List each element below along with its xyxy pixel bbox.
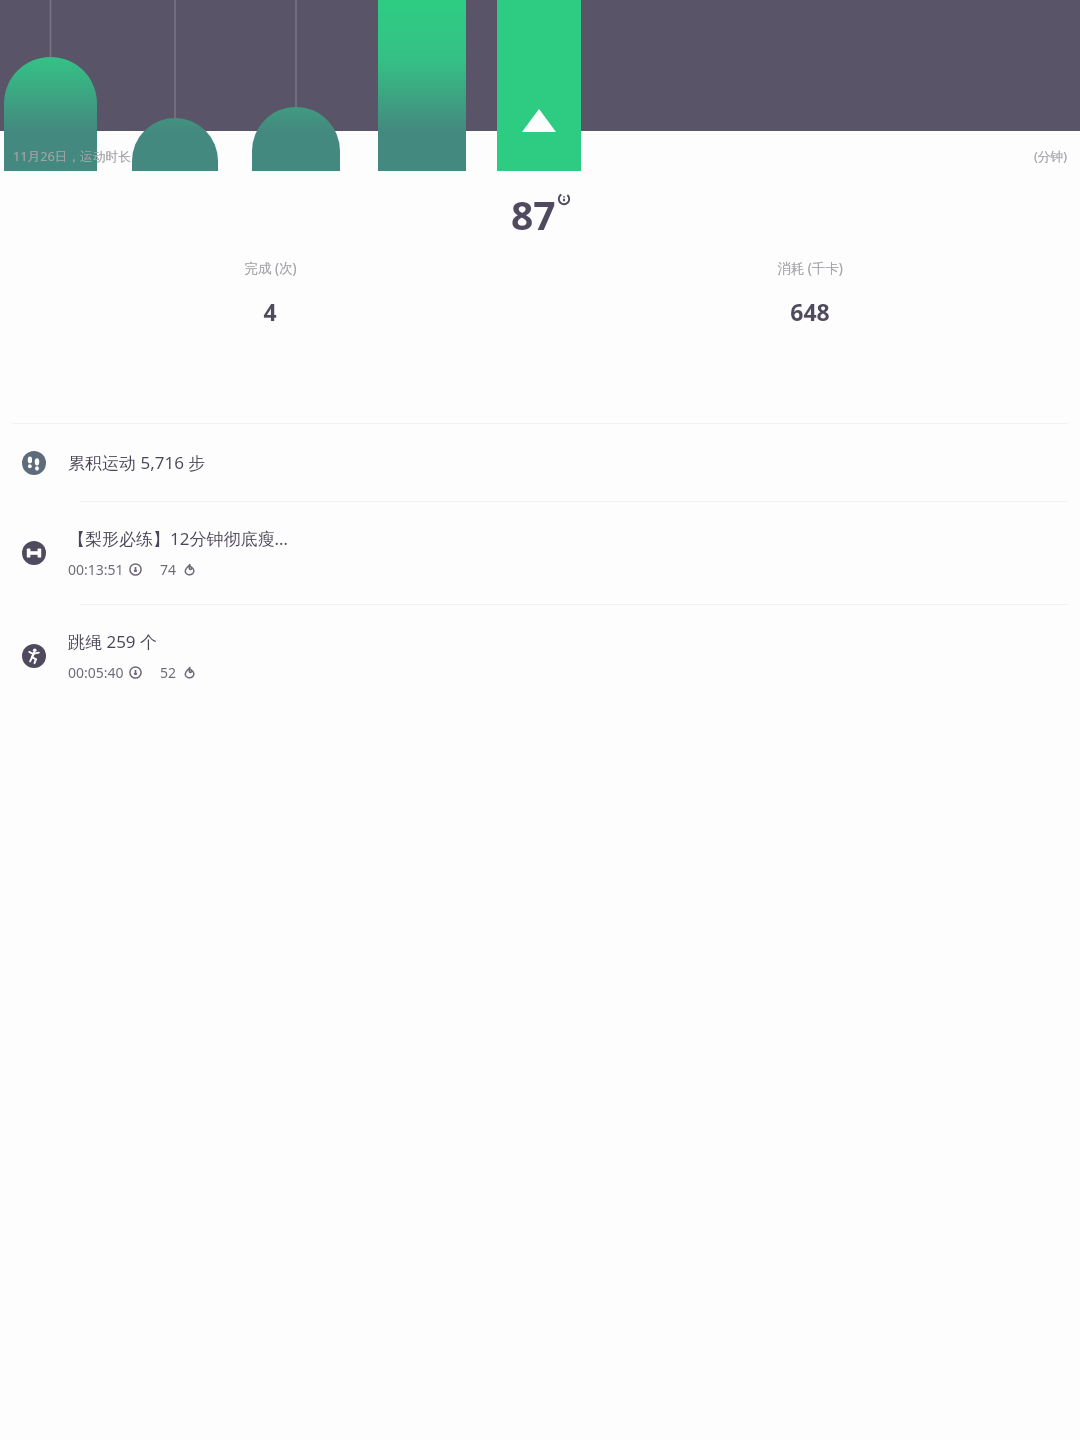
staticText: 4	[263, 296, 277, 327]
button[interactable]: 完成 (次)	[0, 259, 540, 327]
staticText: 00:13:51	[68, 560, 124, 579]
staticText: 648	[790, 296, 830, 327]
button[interactable]: 【梨形必练】12分钟彻底瘦…	[0, 502, 1080, 604]
staticText: 累积运动 5,716 步	[68, 451, 206, 474]
button[interactable]: Info	[558, 193, 570, 205]
staticText: 【梨形必练】12分钟彻底瘦…	[68, 527, 288, 550]
staticText: 87	[511, 188, 556, 241]
staticText: 消耗 (千卡)	[777, 259, 843, 277]
staticText: 完成 (次)	[244, 259, 297, 277]
staticText: 52	[160, 663, 177, 682]
staticText: 跳绳 259 个	[68, 630, 158, 653]
staticText: 11月26日，运动时长	[13, 147, 131, 164]
button[interactable]: 消耗 (千卡)	[540, 259, 1080, 327]
button[interactable]: 跳绳 259 个	[0, 605, 1080, 707]
staticText: 74	[160, 560, 177, 579]
button[interactable]: 累积运动 5,716 步	[0, 424, 1080, 501]
staticText: (分钟)	[1034, 147, 1067, 164]
staticText: 00:05:40	[68, 663, 124, 682]
